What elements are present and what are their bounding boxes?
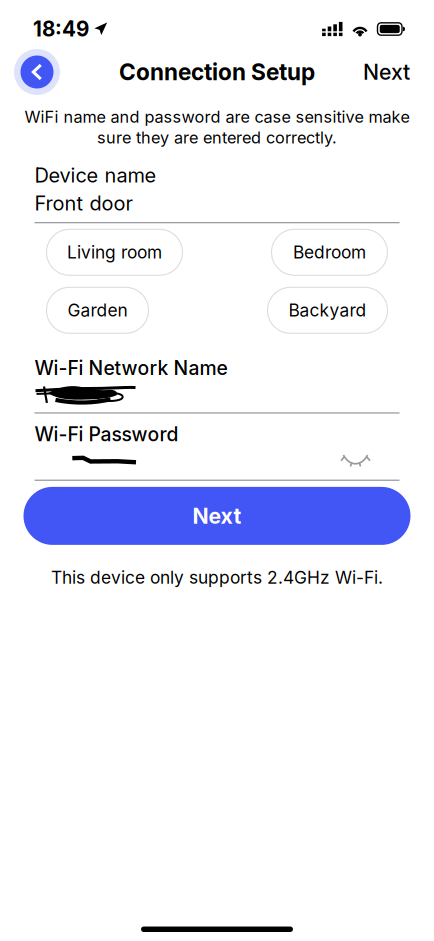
staticText: Device name bbox=[34, 163, 156, 187]
staticText: sure they are entered correctly. bbox=[97, 128, 337, 147]
button[interactable]: Living room bbox=[46, 229, 182, 275]
staticText: Backyard bbox=[288, 300, 366, 321]
button[interactable]: Garden bbox=[46, 287, 148, 333]
button[interactable]: Bedroom bbox=[271, 229, 387, 275]
staticText: Front door bbox=[34, 191, 132, 215]
staticText: This device only supports 2.4GHz Wi-Fi. bbox=[51, 567, 383, 588]
button[interactable]: Show password bbox=[333, 448, 399, 474]
staticText: Connection Setup bbox=[119, 58, 315, 86]
button[interactable]: Next bbox=[23, 487, 410, 545]
staticText: Living room bbox=[67, 242, 162, 263]
staticText: Wi-Fi Password bbox=[34, 423, 178, 446]
button[interactable]: Next bbox=[355, 49, 418, 95]
staticText: Next bbox=[192, 503, 241, 529]
button[interactable]: Backyard bbox=[267, 287, 387, 333]
staticText: Garden bbox=[67, 300, 127, 321]
staticText: Wi-Fi Network Name bbox=[34, 356, 227, 380]
button[interactable]: Back bbox=[12, 47, 62, 97]
staticText: 18:49 bbox=[33, 16, 89, 41]
staticText: WiFi name and password are case sensitiv… bbox=[24, 107, 409, 127]
staticText: Bedroom bbox=[293, 242, 366, 263]
staticText: Next bbox=[363, 59, 410, 85]
